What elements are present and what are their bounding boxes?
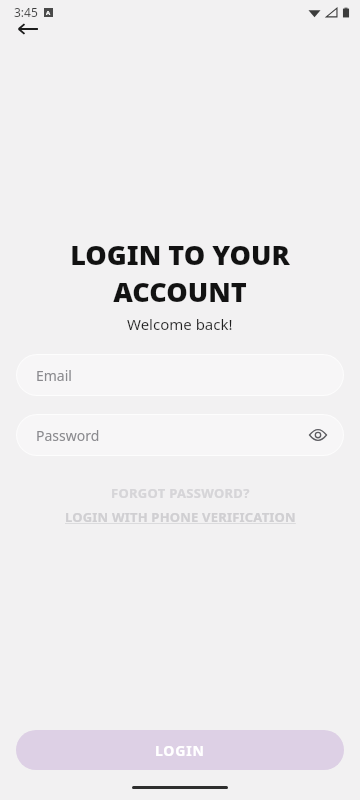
staticText: Email xyxy=(36,366,72,385)
staticText: 3:45 xyxy=(14,4,38,20)
button[interactable]: Back xyxy=(8,9,48,49)
button[interactable]: FORGOT PASSWORD? xyxy=(105,483,256,503)
staticText: LOGIN xyxy=(155,741,205,760)
button[interactable]: Show password xyxy=(304,421,332,449)
staticText: LOGIN WITH PHONE VERIFICATION xyxy=(65,508,296,526)
button[interactable]: LOGIN WITH PHONE VERIFICATION xyxy=(59,507,302,527)
staticText: ACCOUNT xyxy=(113,273,247,310)
button[interactable]: Password xyxy=(16,414,344,456)
button[interactable]: Email xyxy=(16,354,344,396)
staticText: FORGOT PASSWORD? xyxy=(111,484,250,502)
staticText: Welcome back! xyxy=(127,314,233,334)
staticText: A xyxy=(46,9,51,17)
staticText: Password xyxy=(36,426,100,445)
button[interactable]: LOGIN xyxy=(16,730,344,770)
staticText: LOGIN TO YOUR xyxy=(70,236,290,273)
